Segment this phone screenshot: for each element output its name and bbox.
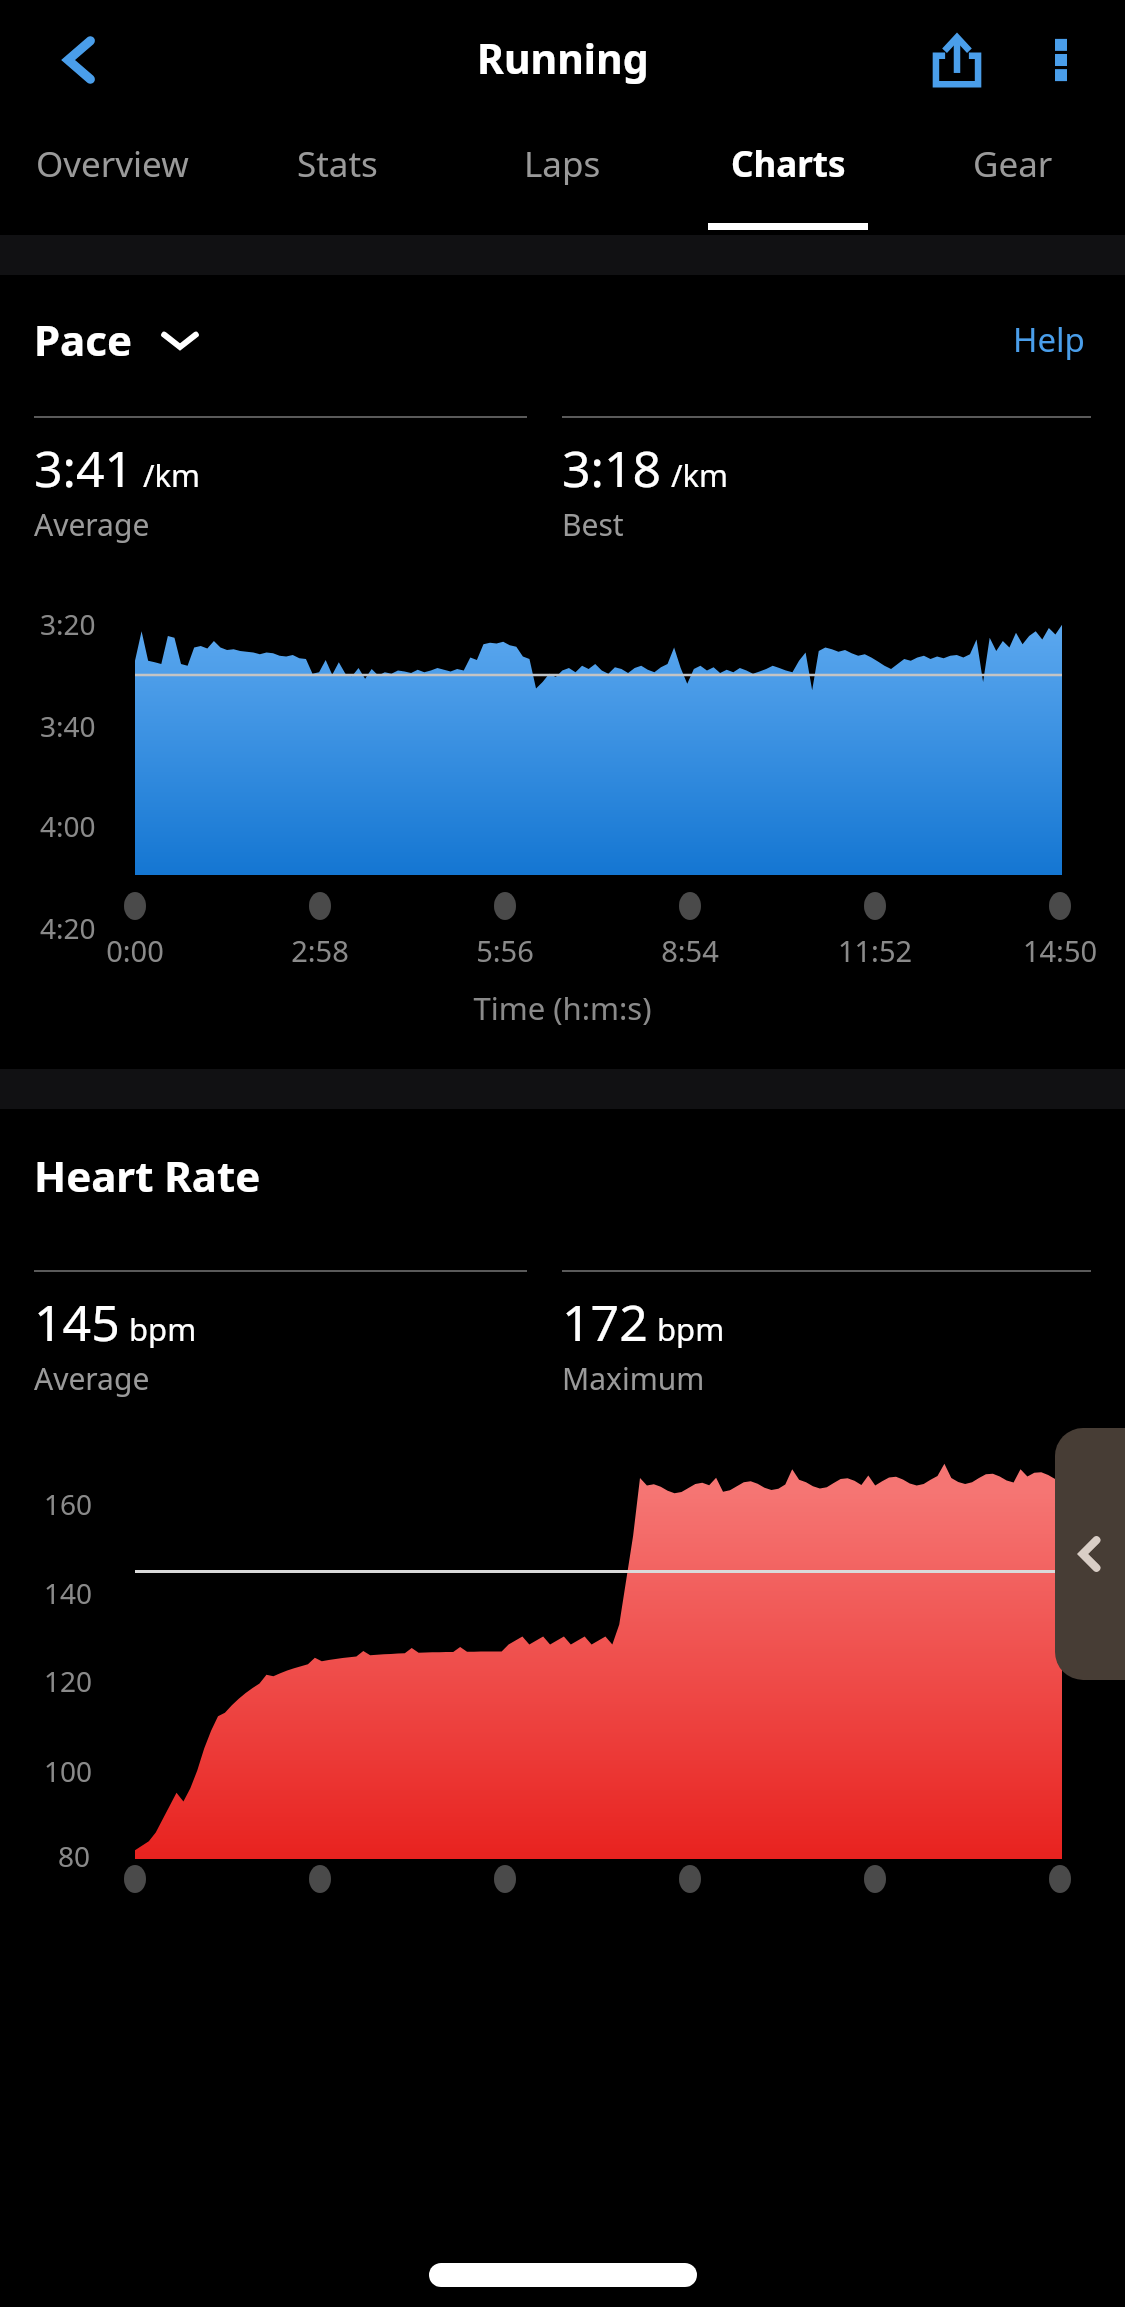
staticText: /km [143,454,201,496]
staticText: 120 [44,1662,93,1700]
staticText: bpm [129,1308,197,1350]
staticText: 3:40 [40,707,96,745]
button[interactable]: Share [905,8,1009,112]
staticText: Gear [973,140,1053,188]
button[interactable]: Help [1007,311,1091,368]
staticText: 145 [34,1288,120,1356]
staticText: 0:00 [85,931,185,970]
button[interactable]: Overview [0,120,225,235]
staticText: Average [34,1358,150,1399]
button[interactable]: Open side panel [1055,1428,1125,1680]
staticText: 4:00 [40,807,96,845]
staticText: Time (h:m:s) [0,987,1125,1029]
staticText: Maximum [562,1358,705,1399]
button[interactable]: Stats [225,120,450,235]
button[interactable]: Back [24,4,136,116]
staticText: 100 [44,1752,93,1790]
staticText: Best [562,504,624,545]
staticText: 140 [44,1574,93,1612]
staticText: 11:52 [825,931,925,970]
button[interactable]: More options [1009,8,1113,112]
staticText: 4:20 [40,909,96,947]
staticText: Charts [731,140,846,188]
staticText: bpm [657,1308,725,1350]
staticText: 172 [562,1288,648,1356]
staticText: 3:41 [34,434,134,502]
staticText: Average [34,504,150,545]
staticText: Stats [297,140,378,188]
staticText: 14:50 [1010,931,1110,970]
button[interactable]: Gear [900,120,1125,235]
staticText: 3:18 [562,434,662,502]
button[interactable]: Pace [34,311,202,368]
staticText: Overview [36,140,189,188]
button[interactable]: Laps [450,120,675,235]
staticText: 160 [44,1485,93,1523]
staticText: 80 [58,1837,91,1875]
staticText: Help [1013,317,1085,362]
staticText: /km [671,454,729,496]
staticText: Laps [524,140,601,188]
staticText: 5:56 [455,931,555,970]
staticText: 2:58 [270,931,370,970]
staticText: 3:20 [40,605,96,643]
staticText: Pace [34,311,132,368]
staticText: Running [477,30,649,86]
staticText: Heart Rate [34,1147,261,1204]
staticText: 8:54 [640,931,740,970]
button[interactable]: Charts [675,120,900,235]
